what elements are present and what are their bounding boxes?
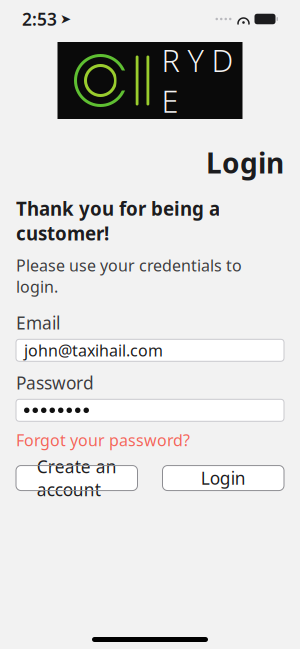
button[interactable]: Create an account <box>16 465 137 490</box>
staticText: R Y D E <box>161 40 233 121</box>
button[interactable]: john@taxihail.com <box>16 339 284 361</box>
staticText: Login <box>206 144 284 181</box>
staticText: Create an account <box>37 455 117 501</box>
staticText: john@taxihail.com <box>24 340 163 361</box>
staticText: ➤ <box>60 11 71 26</box>
button[interactable] <box>16 399 284 421</box>
staticText: Email <box>16 311 60 334</box>
button[interactable]: Login <box>162 465 284 490</box>
staticText: Please use your credentials to login. <box>16 255 242 297</box>
staticText: Login <box>201 466 246 489</box>
staticText: Thank you for being a customer! <box>16 196 220 246</box>
staticText: Forgot your password? <box>16 429 190 450</box>
staticText: Password <box>16 371 94 394</box>
staticText: 2:53 <box>22 7 57 30</box>
button[interactable]: Forgot your password? <box>16 426 190 453</box>
